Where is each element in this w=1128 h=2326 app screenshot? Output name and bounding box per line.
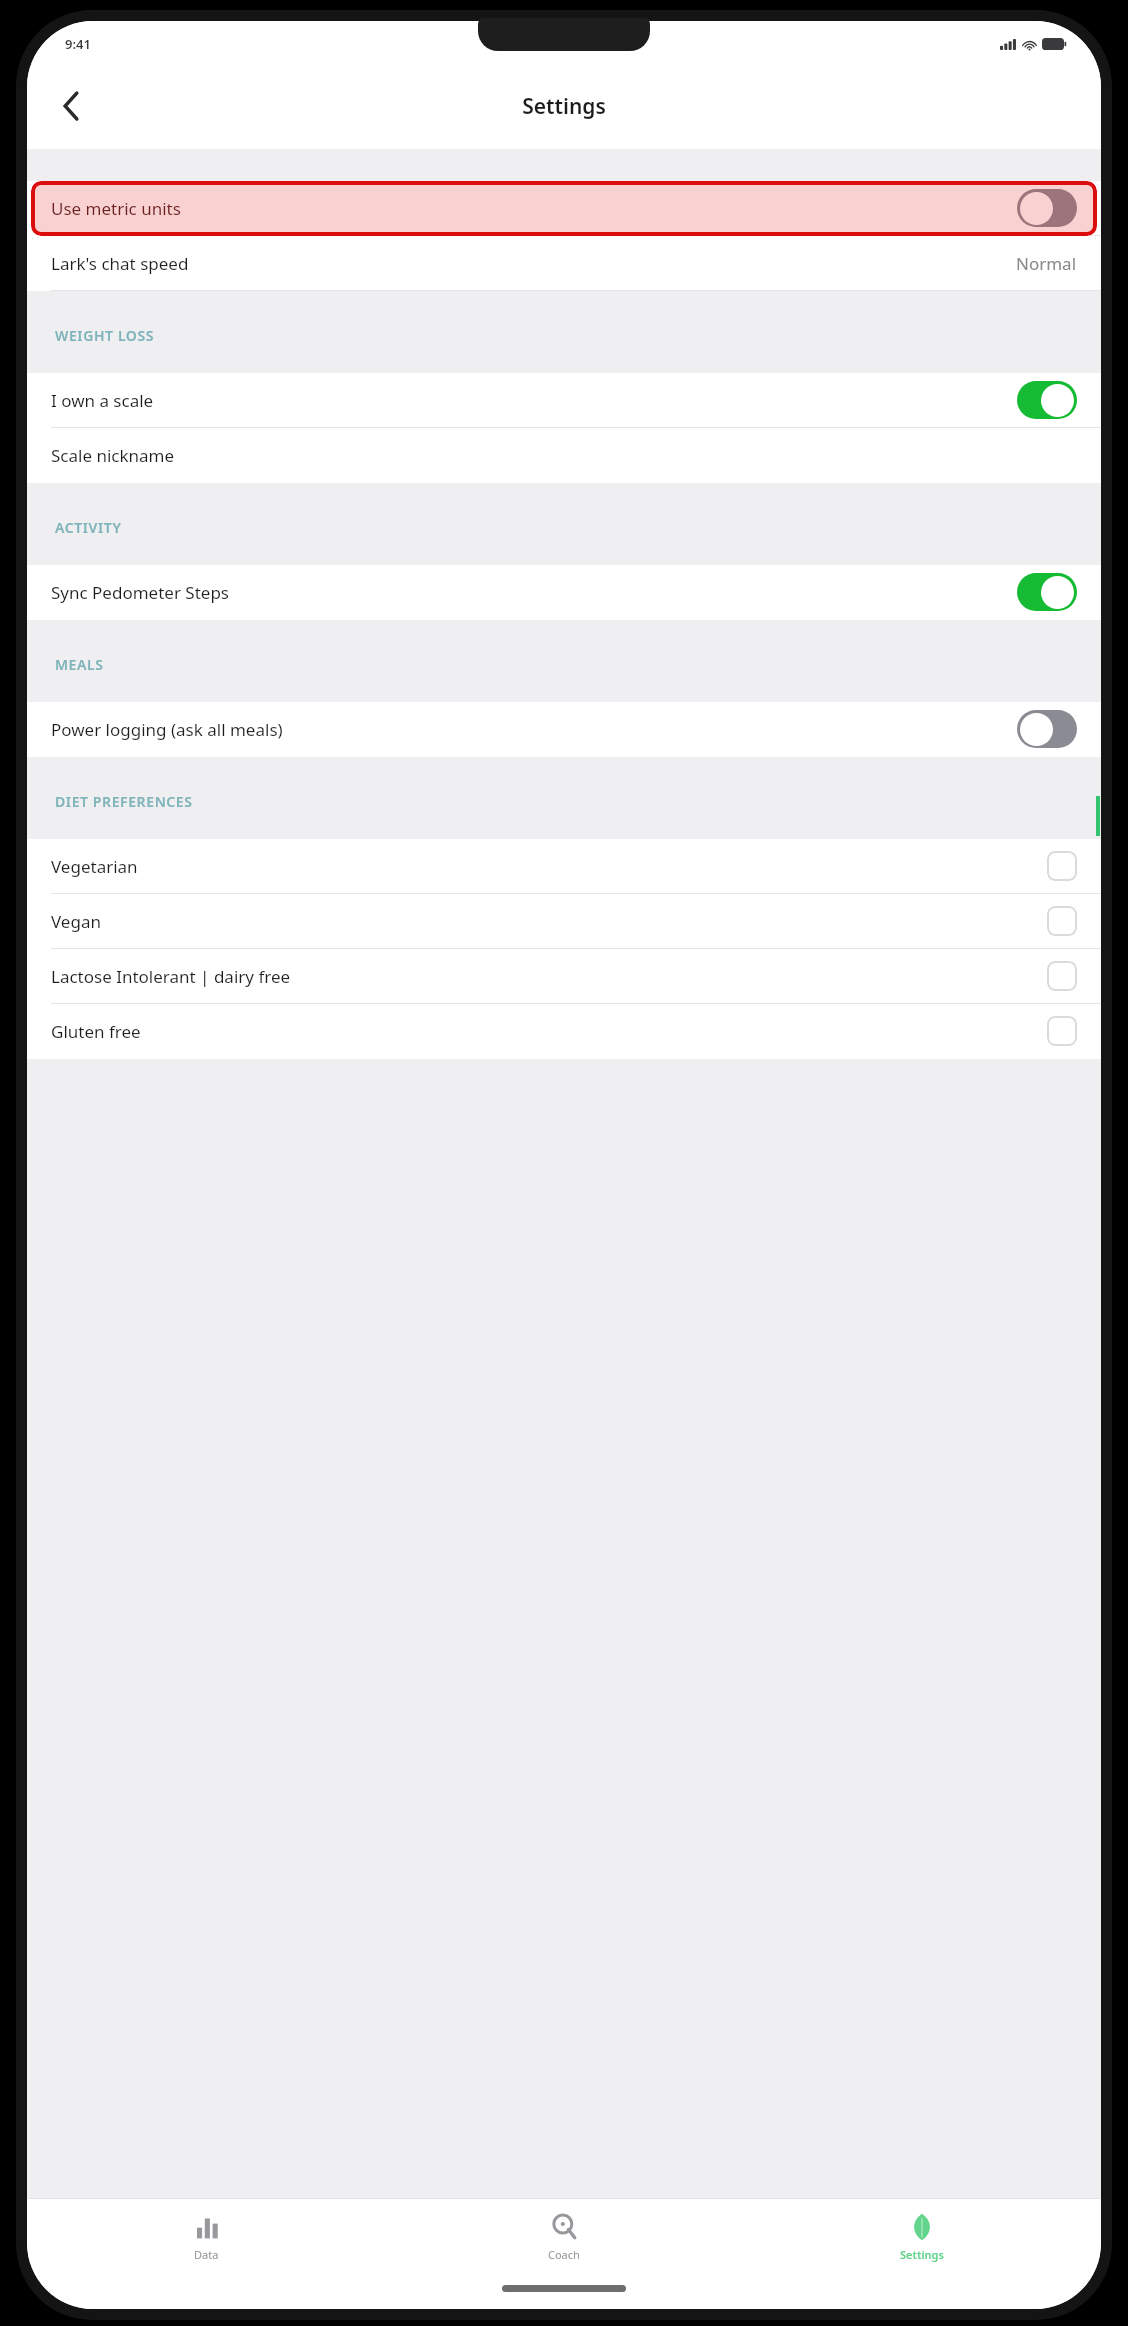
staticText: DIET PREFERENCES: [55, 792, 193, 811]
button[interactable]: I own a scale: [27, 373, 1101, 428]
button[interactable]: Unchecked: [1047, 906, 1077, 936]
staticText: Gluten free: [51, 1020, 141, 1043]
button[interactable]: Settings: [743, 2199, 1101, 2275]
staticText: ACTIVITY: [55, 518, 122, 537]
button[interactable]: Data: [27, 2199, 385, 2275]
staticText: Settings: [522, 92, 606, 121]
staticText: MEALS: [55, 655, 104, 674]
staticText: Power logging (ask all meals): [51, 718, 283, 741]
button[interactable]: Scale nickname: [27, 428, 1101, 483]
button[interactable]: Back: [45, 80, 97, 132]
button[interactable]: Power logging (ask all meals): [27, 702, 1101, 757]
button[interactable]: Sync Pedometer Steps: [27, 565, 1101, 620]
button[interactable]: Vegan: [27, 894, 1101, 949]
staticText: Settings: [900, 2247, 944, 2262]
staticText: Lactose Intolerant | dairy free: [51, 965, 291, 988]
staticText: Coach: [548, 2247, 580, 2262]
button[interactable]: Lark's chat speed: [27, 236, 1101, 291]
button[interactable]: Gluten free: [27, 1004, 1101, 1059]
staticText: Data: [194, 2247, 219, 2262]
staticText: Vegetarian: [51, 855, 138, 878]
staticText: I own a scale: [51, 389, 154, 412]
button[interactable]: Off: [1017, 189, 1077, 227]
button[interactable]: Off: [1017, 710, 1077, 748]
button[interactable]: On: [1017, 381, 1077, 419]
staticText: Sync Pedometer Steps: [51, 581, 230, 604]
staticText: WEIGHT LOSS: [55, 326, 155, 345]
staticText: Use metric units: [51, 197, 181, 220]
button[interactable]: Vegetarian: [27, 839, 1101, 894]
button[interactable]: Lactose Intolerant | dairy free: [27, 949, 1101, 1004]
button[interactable]: Use metric units: [27, 181, 1101, 236]
staticText: 9:41: [65, 35, 91, 53]
button[interactable]: On: [1017, 573, 1077, 611]
button[interactable]: Unchecked: [1047, 961, 1077, 991]
staticText: Scale nickname: [51, 444, 175, 467]
button[interactable]: Unchecked: [1047, 1016, 1077, 1046]
staticText: Normal: [1016, 252, 1077, 275]
staticText: Lark's chat speed: [51, 252, 189, 275]
staticText: Vegan: [51, 910, 101, 933]
button[interactable]: Unchecked: [1047, 851, 1077, 881]
button[interactable]: Coach: [385, 2199, 743, 2275]
